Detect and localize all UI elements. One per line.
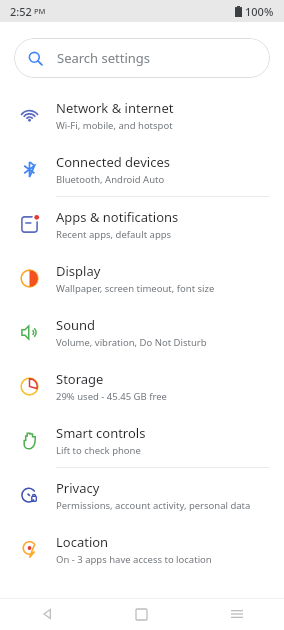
other: Apps [20,215,39,234]
staticText: Display [56,262,101,280]
button[interactable]: Network [0,88,284,142]
staticText: Network & internet [56,99,174,117]
other: Network [20,106,39,125]
button[interactable]: Smart controls [0,413,284,467]
staticText: Smart controls [56,424,146,442]
other: Smart controls [20,431,39,450]
staticText: Bluetooth, Android Auto [56,173,165,186]
staticText: 29% used - 45.45 GB free [56,390,167,403]
staticText: Sound [56,316,96,334]
button[interactable]: Apps [0,197,284,251]
button[interactable]: Storage [0,359,284,413]
button[interactable]: Privacy [0,468,284,522]
button[interactable]: Sound [0,305,284,359]
staticText: Location [56,533,109,551]
staticText: Apps & notifications [56,208,179,226]
button[interactable]: Back [0,598,94,630]
staticText: Wi-Fi, mobile, and hotspot [56,119,173,132]
staticText: PM [34,6,46,16]
staticText: Volume, vibration, Do Not Disturb [56,336,207,349]
staticText: Recent apps, default apps [56,228,172,241]
staticText: Permissions, account activity, personal … [56,499,251,512]
other: Connected devices [20,160,39,179]
other: Display [20,269,39,288]
staticText: 100% [245,4,274,19]
other: Sound [20,323,39,342]
other: Privacy [20,486,39,505]
staticText: Search settings [57,49,151,67]
button[interactable]: Search settings [14,38,270,78]
staticText: On - 3 apps have access to location [56,553,212,566]
other: Location [20,540,39,559]
staticText: 2:52 [10,4,32,19]
staticText: Lift to check phone [56,444,141,457]
button[interactable]: Recent apps [189,598,284,630]
button[interactable]: Display [0,251,284,305]
staticText: Connected devices [56,153,170,171]
staticText: Storage [56,370,104,388]
staticText: Wallpaper, screen timeout, font size [56,282,215,295]
button[interactable]: Connected devices [0,142,284,196]
other: Storage [20,377,39,396]
button[interactable]: Home [94,598,189,630]
button[interactable]: Location [0,522,284,576]
staticText: Privacy [56,479,100,497]
